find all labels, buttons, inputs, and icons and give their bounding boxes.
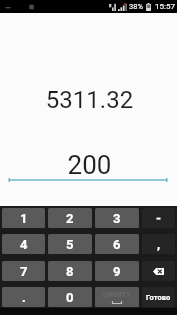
button[interactable]: . — [2, 287, 45, 307]
staticText: 4 — [20, 237, 28, 252]
button[interactable]: 1 — [2, 208, 45, 228]
button[interactable]: - — [142, 208, 175, 228]
staticText: 5 — [66, 237, 74, 252]
button[interactable]: , — [142, 234, 175, 254]
button[interactable]: Switch to QWERTY keyboard — [95, 287, 139, 307]
staticText: - — [156, 211, 162, 226]
staticText: Готово — [146, 293, 171, 302]
staticText: QWERTY — [103, 291, 131, 299]
button[interactable]: 8 — [48, 261, 92, 281]
button[interactable]: 9 — [95, 261, 139, 281]
staticText: 9 — [113, 264, 121, 279]
staticText: 3 — [113, 211, 121, 226]
staticText: 7 — [20, 264, 28, 279]
staticText: 2 — [66, 211, 74, 226]
staticText: 200 — [1, 150, 177, 180]
button[interactable]: Backspace — [142, 261, 175, 281]
staticText: , — [157, 237, 161, 252]
staticText: 5311.32 — [1, 86, 177, 114]
button[interactable]: Готово — [142, 287, 175, 307]
button[interactable]: 6 — [95, 234, 139, 254]
button[interactable]: 5 — [48, 234, 92, 254]
staticText: 1 — [20, 211, 28, 226]
button[interactable]: 7 — [2, 261, 45, 281]
other: Notification — [5, 3, 11, 11]
staticText: 38% — [129, 2, 143, 11]
other: Notification — [29, 3, 34, 11]
button[interactable]: 2 — [48, 208, 92, 228]
button[interactable]: 0 — [48, 287, 92, 307]
staticText: 6 — [113, 237, 121, 252]
button[interactable]: 4 — [2, 234, 45, 254]
staticText: 15:57 — [155, 2, 175, 11]
staticText: . — [22, 290, 26, 305]
button[interactable]: 3 — [95, 208, 139, 228]
staticText: 0 — [66, 290, 74, 305]
staticText: 8 — [66, 264, 74, 279]
